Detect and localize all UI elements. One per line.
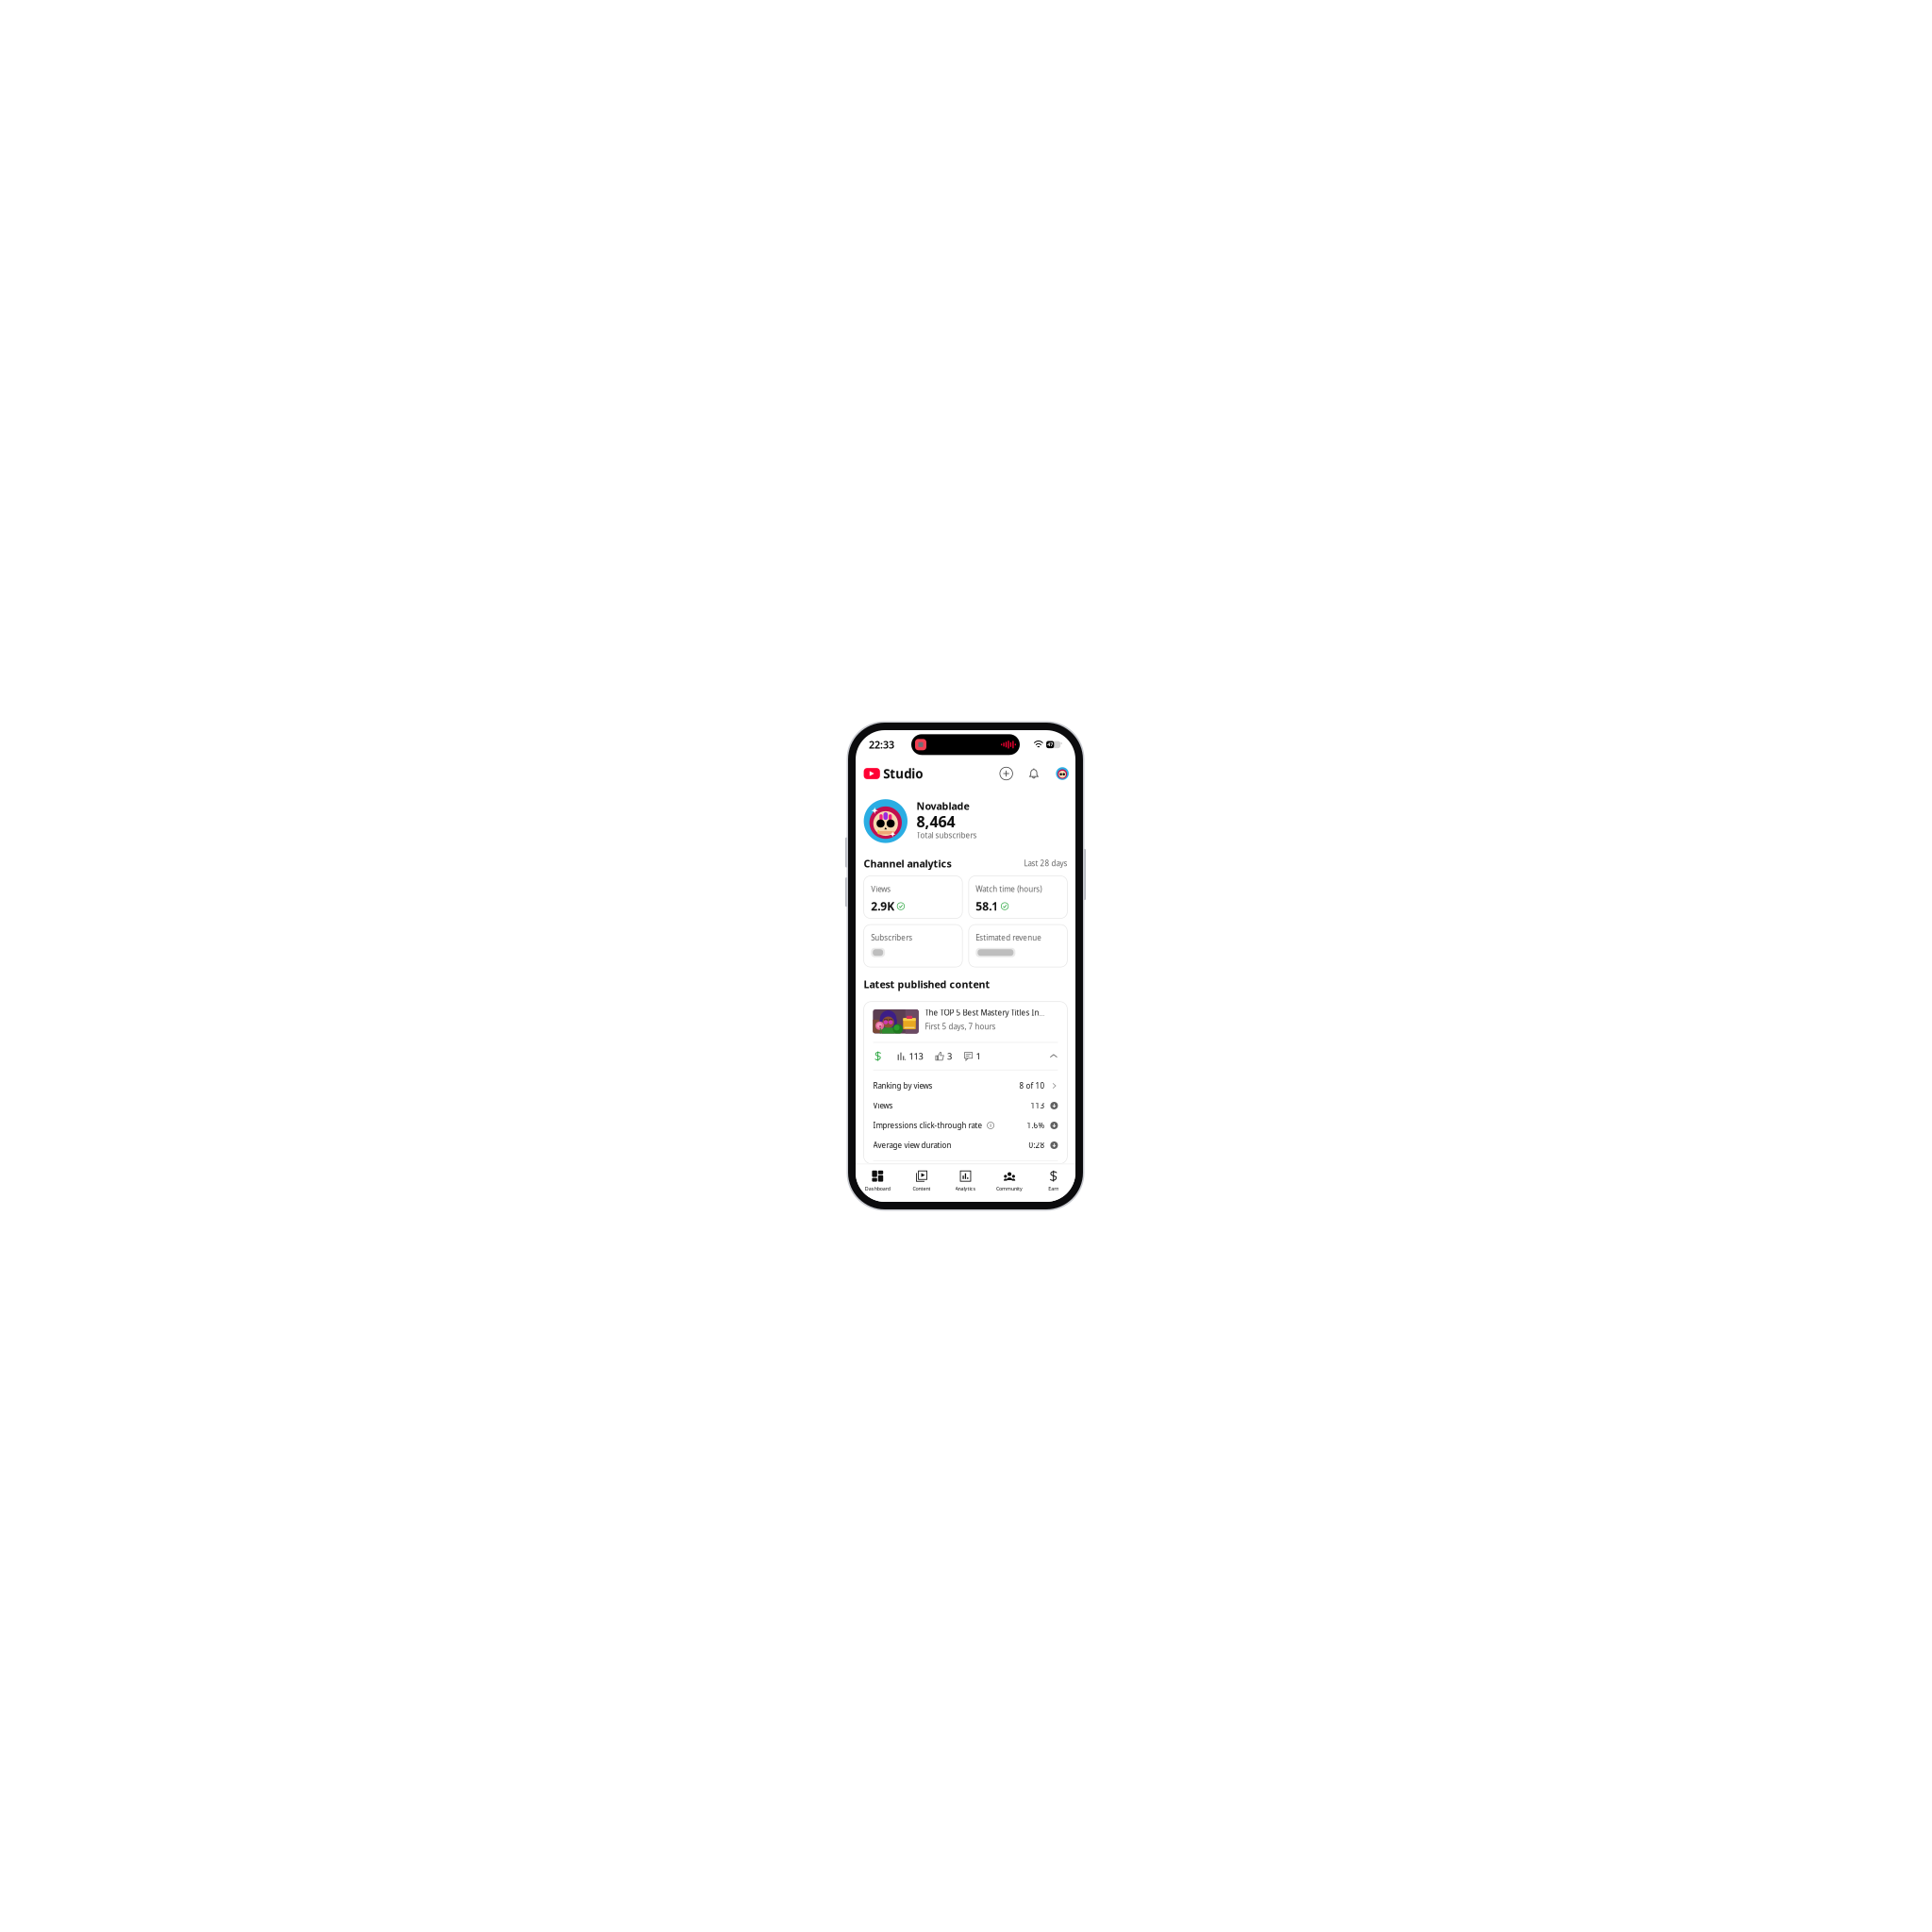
button[interactable]: Impressions click-through rate (864, 1116, 1067, 1135)
staticText: Subscribers (871, 933, 912, 943)
staticText: 1.6% (1027, 1120, 1045, 1130)
staticText: Total subscribers (917, 830, 977, 840)
staticText: 8 of 10 (1019, 1081, 1045, 1091)
button[interactable]: Novablade (856, 789, 1075, 851)
staticText: Ranking by views (873, 1081, 933, 1091)
button[interactable]: Analytics (944, 1164, 988, 1202)
button[interactable]: Views (864, 876, 962, 918)
staticText: 22:33 (869, 738, 894, 751)
staticText: Dashboard (865, 1185, 890, 1192)
staticText: Estimated revenue (976, 933, 1042, 943)
button[interactable]: Your channel (1056, 767, 1069, 780)
button[interactable]: Monetization (873, 1051, 883, 1061)
staticText: Community (996, 1185, 1023, 1192)
staticText: First 5 days, 7 hours (925, 1021, 996, 1031)
staticText: 113 (909, 1050, 923, 1062)
staticText: Novablade (917, 799, 969, 813)
staticText: 47 (1047, 741, 1053, 748)
staticText: Average view duration (873, 1140, 951, 1150)
staticText: Latest published content (864, 978, 990, 991)
staticText: 2.9K (871, 899, 894, 914)
staticText: Views (871, 884, 891, 894)
staticText: Views (873, 1101, 893, 1111)
staticText: 8,464 (917, 811, 955, 831)
button[interactable]: Studio (864, 765, 923, 782)
button[interactable]: The TOP 5 Best Mastery Titles In B... (864, 1001, 1067, 1042)
staticText: 3 (947, 1050, 952, 1062)
staticText: Analytics (955, 1185, 976, 1192)
button[interactable]: Average view duration (864, 1135, 1067, 1155)
staticText: Studio (883, 765, 923, 782)
staticText: 1 (976, 1050, 981, 1062)
staticText: Impressions click-through rate (873, 1120, 983, 1130)
button[interactable]: Views (864, 1096, 1067, 1116)
button[interactable]: Content (900, 1164, 944, 1202)
staticText: 113 (1031, 1101, 1045, 1111)
button[interactable]: Notifications (1028, 767, 1040, 780)
button[interactable]: Earn (1031, 1164, 1075, 1202)
staticText: 0:28 (1029, 1140, 1045, 1150)
button[interactable]: Watch time (hours) (969, 876, 1067, 918)
button[interactable]: Subscribers (864, 925, 962, 967)
staticText: Watch time (hours) (976, 884, 1042, 894)
staticText: Channel analytics (864, 857, 951, 870)
button[interactable]: Dashboard (856, 1164, 900, 1202)
button[interactable]: Ranking by views (864, 1076, 1067, 1096)
staticText: The TOP 5 Best Mastery Titles In B... (925, 1008, 1045, 1018)
button[interactable]: Community (988, 1164, 1031, 1202)
staticText: Last 28 days (1024, 858, 1067, 868)
button[interactable]: Create (1000, 767, 1013, 780)
staticText: 58.1 (976, 899, 998, 914)
staticText: Earn (1048, 1185, 1059, 1192)
staticText: Content (913, 1185, 931, 1192)
button[interactable]: Collapse (1049, 1052, 1058, 1060)
button[interactable]: Estimated revenue (969, 925, 1067, 967)
